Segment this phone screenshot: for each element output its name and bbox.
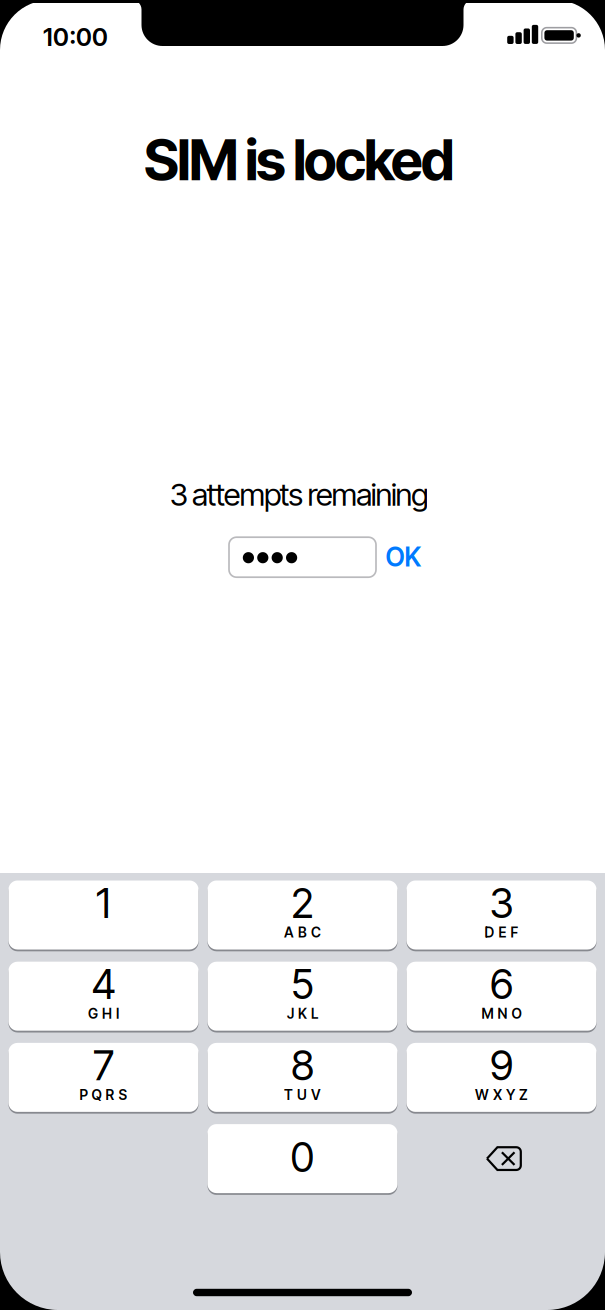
staticText: DEF xyxy=(484,924,518,941)
staticText: 7 xyxy=(93,1041,114,1090)
staticText: JKL xyxy=(287,1005,318,1022)
button[interactable]: 8 xyxy=(207,1042,397,1113)
staticText: MNO xyxy=(481,1005,521,1022)
staticText: OK xyxy=(385,541,421,573)
button[interactable]: 5 xyxy=(207,961,397,1032)
button[interactable]: 7 xyxy=(8,1042,198,1113)
staticText: PQRS xyxy=(79,1086,127,1103)
staticText: 3 xyxy=(489,878,513,928)
staticText: 8 xyxy=(291,1041,314,1090)
button[interactable]: Delete xyxy=(482,1143,526,1175)
staticText: 0 xyxy=(290,1132,314,1182)
staticText: 2 xyxy=(291,878,314,928)
button[interactable]: 4 xyxy=(8,961,198,1032)
staticText: 3 attempts remaining xyxy=(170,476,428,513)
staticText: TUV xyxy=(284,1086,321,1103)
button[interactable]: 0 xyxy=(207,1123,397,1194)
staticText: 10:00 xyxy=(43,22,108,52)
staticText: 1 xyxy=(96,878,111,928)
staticText: 4 xyxy=(91,959,115,1009)
staticText: ABC xyxy=(284,924,321,941)
button[interactable]: 6 xyxy=(406,961,596,1032)
button[interactable]: OK xyxy=(385,541,421,573)
button[interactable]: 3 xyxy=(406,879,596,950)
button[interactable]: 2 xyxy=(207,879,397,950)
staticText: 9 xyxy=(490,1041,513,1090)
staticText: SIM is locked xyxy=(144,126,454,194)
staticText: 6 xyxy=(490,959,513,1009)
button[interactable]: Enter PIN xyxy=(229,537,376,577)
button[interactable]: 1 xyxy=(8,879,198,950)
staticText: GHI xyxy=(88,1005,119,1022)
button[interactable]: 9 xyxy=(406,1042,596,1113)
staticText: WXYZ xyxy=(475,1086,528,1103)
staticText: 5 xyxy=(291,959,314,1009)
